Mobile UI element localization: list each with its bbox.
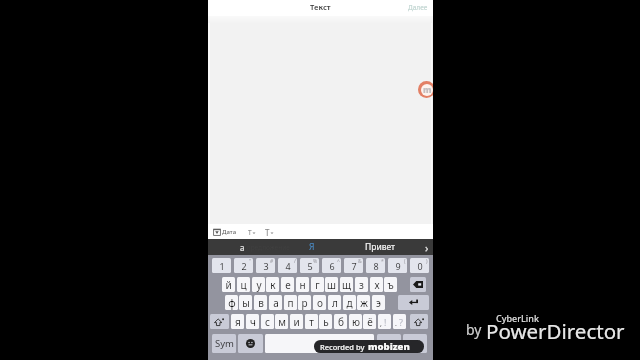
button[interactable]: б <box>334 314 347 329</box>
button[interactable]: ы <box>239 295 252 310</box>
staticText: я <box>235 315 241 329</box>
staticText: Дата <box>222 228 237 236</box>
staticText: T <box>248 228 252 237</box>
button[interactable]: More suggestions <box>419 239 434 255</box>
staticText: 6 <box>329 260 335 272</box>
button[interactable]: м <box>275 314 288 329</box>
button[interactable]: д <box>343 295 356 310</box>
button[interactable]: ъ <box>384 277 397 292</box>
staticText: 1 <box>219 260 225 272</box>
staticText: б <box>338 315 344 329</box>
button[interactable]: Text style <box>248 227 256 237</box>
button[interactable]: а <box>208 239 286 255</box>
button[interactable]: ! <box>378 314 391 329</box>
staticText: й <box>225 278 232 292</box>
staticText: ш <box>327 278 336 292</box>
button[interactable]: Shift <box>210 314 229 329</box>
button[interactable]: г <box>311 277 324 292</box>
button[interactable]: Text style <box>265 227 274 237</box>
button[interactable]: ? <box>393 314 406 329</box>
button[interactable]: Я <box>290 239 333 255</box>
staticText: ( <box>404 258 406 265</box>
button[interactable]: 2 <box>234 258 253 273</box>
button[interactable]: ь <box>319 314 332 329</box>
button[interactable]: в <box>254 295 267 310</box>
button[interactable]: п <box>284 295 297 310</box>
staticText: ? <box>399 316 403 328</box>
staticText: . <box>395 319 397 329</box>
staticText: 4 <box>285 260 291 272</box>
staticText: и <box>293 315 300 329</box>
staticText: # <box>270 258 274 265</box>
button[interactable]: 0 <box>410 258 429 273</box>
button[interactable]: Backspace <box>410 277 426 292</box>
button[interactable]: й <box>222 277 235 292</box>
staticText: % <box>313 258 318 265</box>
button[interactable]: и <box>290 314 303 329</box>
button[interactable]: Sym <box>212 334 236 353</box>
button[interactable]: 4 <box>278 258 297 273</box>
button[interactable]: ю <box>349 314 362 329</box>
button[interactable]: 6 <box>322 258 341 273</box>
button[interactable]: ё <box>363 314 376 329</box>
staticText: 3 <box>263 260 269 272</box>
staticText: by <box>466 320 482 339</box>
staticText: mobizen <box>368 340 410 353</box>
staticText: к <box>270 278 276 292</box>
button[interactable]: 3 <box>256 258 275 273</box>
button[interactable]: Дата <box>213 227 237 236</box>
staticText: в <box>258 296 264 310</box>
button[interactable]: ф <box>225 295 238 310</box>
staticText: 2 <box>241 260 247 272</box>
staticText: ю <box>352 315 360 329</box>
staticText: ъ <box>387 278 394 292</box>
button[interactable]: Shift <box>410 314 428 329</box>
staticText: CyberLink <box>496 312 539 324</box>
staticText: у <box>256 278 262 292</box>
button[interactable]: е <box>281 277 294 292</box>
button[interactable]: р <box>298 295 311 310</box>
button[interactable]: т <box>305 314 318 329</box>
button[interactable]: 1 <box>212 258 231 273</box>
staticText: Recorded by <box>320 342 365 352</box>
button[interactable]: Enter <box>398 295 429 310</box>
button[interactable]: ч <box>246 314 259 329</box>
button[interactable]: щ <box>340 277 353 292</box>
staticText: х <box>374 278 380 292</box>
staticText: н <box>299 278 306 292</box>
button[interactable]: х <box>370 277 383 292</box>
button[interactable]: Space <box>265 334 374 353</box>
button[interactable]: Mobizen recorder <box>418 81 435 98</box>
button[interactable]: Emoji <box>238 334 263 353</box>
button[interactable]: 9 <box>388 258 407 273</box>
button[interactable]: 7 <box>344 258 363 273</box>
button[interactable]: Return <box>403 334 427 353</box>
button[interactable]: з <box>355 277 368 292</box>
button[interactable]: у <box>252 277 265 292</box>
button[interactable]: с <box>261 314 274 329</box>
button[interactable]: э <box>372 295 385 310</box>
staticText: 9 <box>395 260 401 272</box>
staticText: 7 <box>351 260 357 272</box>
staticText: ы <box>242 296 250 310</box>
staticText: / <box>294 258 296 265</box>
staticText: " <box>249 258 252 265</box>
button[interactable]: ц <box>237 277 250 292</box>
button[interactable]: я <box>231 314 244 329</box>
button[interactable]: . <box>377 334 401 353</box>
button[interactable]: а <box>269 295 282 310</box>
button[interactable]: ж <box>357 295 370 310</box>
staticText: Sym <box>215 337 234 350</box>
button[interactable]: ш <box>325 277 338 292</box>
button[interactable]: о <box>313 295 326 310</box>
button[interactable]: л <box>328 295 341 310</box>
button[interactable]: Далее <box>408 3 428 12</box>
button[interactable]: Привет <box>352 239 409 255</box>
staticText: 8 <box>373 260 379 272</box>
button[interactable]: к <box>266 277 279 292</box>
button[interactable]: 5 <box>300 258 319 273</box>
button[interactable]: н <box>296 277 309 292</box>
button[interactable]: 8 <box>366 258 385 273</box>
staticText: , <box>380 319 382 329</box>
staticText: Привет <box>365 241 396 253</box>
